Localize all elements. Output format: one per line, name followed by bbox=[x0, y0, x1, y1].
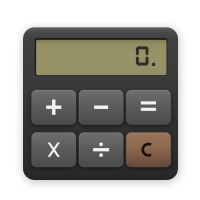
button[interactable]: Multiply bbox=[32, 132, 76, 167]
button[interactable]: Divide bbox=[79, 132, 123, 167]
button[interactable]: Clear bbox=[126, 132, 171, 167]
button[interactable]: Minus bbox=[79, 90, 123, 124]
button[interactable]: Equals bbox=[126, 90, 171, 124]
button[interactable]: Plus bbox=[32, 90, 76, 124]
